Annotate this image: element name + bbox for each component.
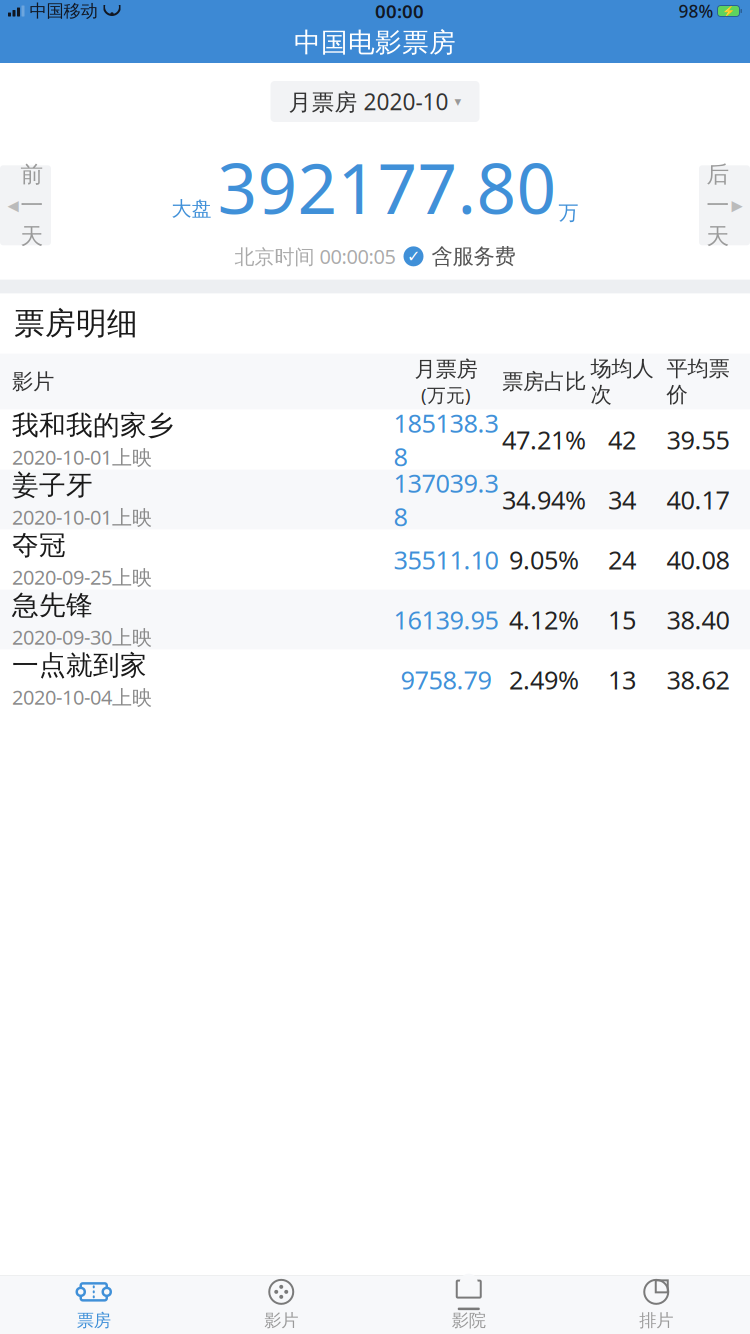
staticText: 影院 [452,1310,486,1331]
staticText: 一 [706,191,729,219]
staticText: 98% [678,0,713,22]
staticText: 35511.10 [393,543,498,576]
staticText: ▶ [731,197,742,214]
staticText: 34 [608,483,636,516]
staticText: 2020-10-01上映 [12,444,152,470]
staticText: 2.49% [509,663,579,696]
staticText: 42 [608,423,636,456]
staticText: 一 [20,191,43,219]
staticText: 137039.38 [393,466,498,533]
staticText: 万 [558,200,578,225]
button[interactable]: 一点就到家 [0,650,750,710]
staticText: 47.21% [502,423,586,456]
button[interactable]: ◀ [0,165,51,245]
staticText: 40.17 [666,483,729,516]
staticText: 票房明细 [14,305,138,342]
staticText: 票房 [77,1310,111,1331]
staticText: 39.55 [666,423,729,456]
staticText: 392177.80 [217,141,556,233]
staticText: 16139.95 [393,603,498,636]
button[interactable]: 我和我的家乡 [0,410,750,470]
button[interactable]: 夺冠 [0,530,750,590]
staticText: 影片 [264,1310,298,1331]
staticText: 影片 [12,368,54,395]
staticText: 13 [608,663,636,696]
staticText: 夺冠 [12,529,66,562]
staticText: 中国移动 [29,0,97,22]
staticText: 天 [20,222,43,250]
button[interactable]: 排片 [562,1276,750,1334]
staticText: 38.62 [666,663,729,696]
staticText: 前 [20,161,43,188]
staticText: 平均票价 [666,355,729,408]
staticText: 我和我的家乡 [12,409,174,442]
staticText: 00:00 [375,0,424,23]
staticText: ◀ [7,197,18,214]
staticText: 排片 [639,1310,673,1331]
staticText: 月票房 2020-10 [288,86,448,116]
staticText: 9758.79 [400,663,491,696]
staticText: 24 [608,543,636,576]
button[interactable]: 急先锋 [0,590,750,650]
staticText: (万元) [421,382,471,407]
staticText: 2020-10-01上映 [12,504,152,530]
staticText: 含服务费 [431,243,515,269]
button[interactable]: 姜子牙 [0,470,750,530]
staticText: 185138.38 [393,406,498,473]
staticText: ⚡ [722,5,735,17]
staticText: 9.05% [509,543,579,576]
staticText: ▾ [454,94,461,109]
staticText: 姜子牙 [12,469,93,502]
staticText: 大盘 [171,196,211,221]
staticText: 天 [706,222,729,250]
staticText: 38.40 [666,603,729,636]
button[interactable]: 后 [699,165,750,245]
staticText: 40.08 [666,543,729,576]
staticText: 月票房 [414,356,477,382]
staticText: 2020-10-04上映 [12,684,152,710]
button[interactable]: 影院 [375,1276,562,1334]
staticText: 15 [608,603,636,636]
staticText: 34.94% [502,483,586,516]
button[interactable]: 票房 [0,1276,187,1334]
staticText: 后 [706,161,729,188]
staticText: ✓ [407,247,420,265]
staticText: 一点就到家 [12,649,147,682]
button[interactable]: 影片 [187,1276,375,1334]
staticText: 4.12% [509,603,579,636]
staticText: 场均人次 [590,355,653,408]
staticText: 2020-09-25上映 [12,564,152,590]
staticText: 票房占比 [502,368,586,395]
staticText: 中国电影票房 [294,26,456,59]
button[interactable]: 月票房 2020-10 [270,81,479,122]
staticText: 急先锋 [12,589,93,622]
staticText: 北京时间 00:00:05 [234,243,395,270]
staticText: 2020-09-30上映 [12,624,152,650]
